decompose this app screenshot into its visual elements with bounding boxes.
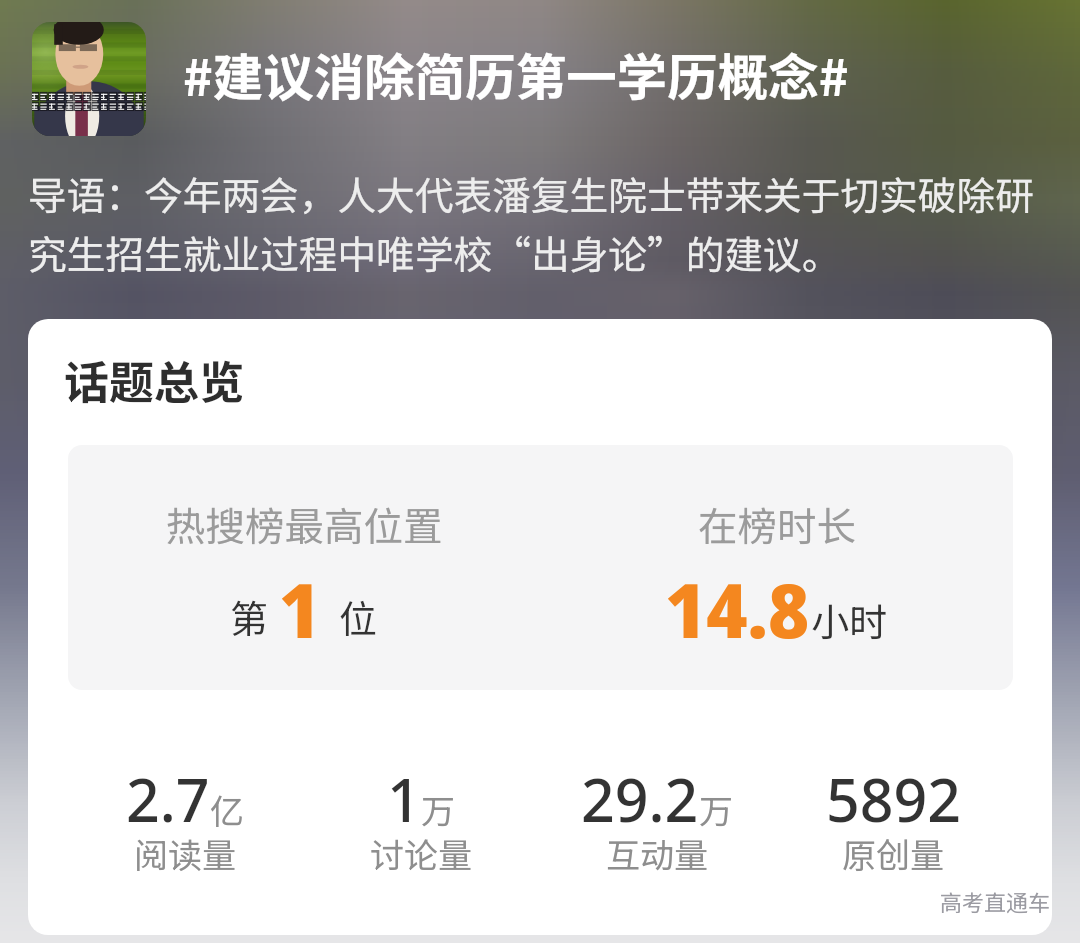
staticText: 万 <box>699 785 733 834</box>
staticText: 小时 <box>811 592 888 647</box>
staticText: 阅读量 <box>134 829 236 878</box>
staticText: 话题总览 <box>64 347 245 412</box>
button[interactable]: 29.2 <box>539 759 775 888</box>
staticText: 1 <box>387 759 421 839</box>
staticText: 2.7 <box>126 759 210 839</box>
button[interactable]: #建议消除简历第一学历概念# <box>183 37 849 110</box>
staticText: 29.2 <box>581 759 699 839</box>
staticText: 热搜榜最高位置 <box>166 495 443 552</box>
staticText: 导语：今年两会，人大代表潘复生院士带来关于切实破除研究生招生就业过程中唯学校“出… <box>28 165 1048 280</box>
button[interactable]: 1 <box>303 759 539 888</box>
staticText: 第 <box>230 589 269 644</box>
staticText: 万 <box>421 785 455 834</box>
staticText: 在榜时长 <box>698 495 856 552</box>
button[interactable]: 2.7 <box>66 759 303 888</box>
button[interactable]: 热搜榜最高位置 <box>68 445 541 690</box>
button[interactable]: 话题配图 <box>32 22 146 136</box>
staticText: 位 <box>339 589 378 644</box>
staticText: 14.8 <box>665 558 810 660</box>
staticText: 亿 <box>210 785 244 834</box>
staticText: 原创量 <box>842 829 944 878</box>
button[interactable]: 在榜时长 <box>540 445 1013 690</box>
staticText: 互动量 <box>606 829 708 878</box>
staticText: 5892 <box>826 759 961 839</box>
button[interactable]: 5892 <box>775 759 1011 888</box>
staticText: 讨论量 <box>370 829 472 878</box>
staticText: 高考直通车 <box>940 885 1051 917</box>
staticText: 1 <box>279 558 321 660</box>
